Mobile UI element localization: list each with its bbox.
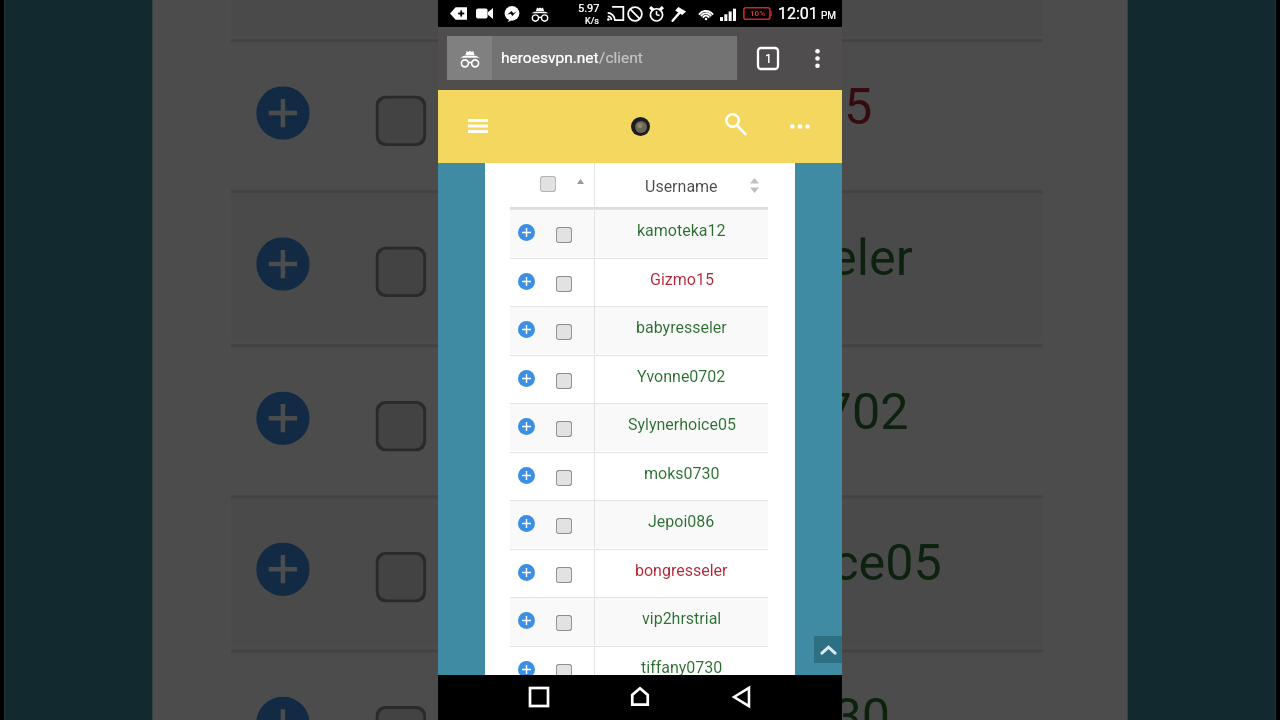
staticText: vip2hrstrial [642, 609, 722, 628]
button[interactable]: Expand row [510, 355, 768, 403]
button[interactable]: Expand row [510, 403, 768, 451]
button[interactable]: Scroll to top [814, 636, 842, 663]
button[interactable]: Expand row [256, 391, 310, 445]
button[interactable]: Select [556, 615, 572, 631]
staticText: babyresseler [627, 228, 914, 288]
staticText: heroesvpn.net [501, 49, 599, 67]
button[interactable]: Expand row [518, 418, 535, 435]
button[interactable]: Expand row [510, 452, 768, 500]
staticText: Jepoi086 [648, 512, 715, 531]
button[interactable]: Select [556, 276, 572, 292]
staticText: K/s [585, 16, 600, 27]
staticText: PM [821, 10, 837, 22]
button[interactable]: Recent apps [517, 675, 561, 720]
button[interactable]: Expand row [510, 500, 768, 548]
button[interactable]: Expand row [231, 344, 1043, 495]
staticText: Yvonne0702 [637, 367, 726, 386]
staticText: Sylynerhoice05 [602, 533, 942, 593]
button[interactable]: Expand row [518, 564, 535, 581]
button[interactable]: Search [714, 103, 758, 147]
button[interactable]: Back [719, 675, 763, 720]
button[interactable]: Tabs [746, 36, 790, 80]
button[interactable]: Menu [456, 104, 500, 148]
button[interactable]: Select [376, 552, 426, 602]
button[interactable]: Expand row [518, 273, 535, 290]
button[interactable]: Select [556, 567, 572, 583]
staticText: Gizmo15 [671, 77, 873, 137]
button[interactable]: Expand row [231, 495, 1043, 646]
button[interactable]: Expand row [518, 321, 535, 338]
staticText: 1 [765, 52, 772, 66]
button[interactable]: Expand row [510, 258, 768, 306]
button[interactable]: Site logo [631, 117, 650, 136]
button[interactable]: Expand row [510, 549, 768, 597]
button[interactable]: Expand row [256, 237, 310, 291]
button[interactable]: Select [556, 227, 572, 243]
staticText: 12:01 [778, 4, 818, 23]
staticText: moks0730 [644, 464, 720, 483]
button[interactable]: Expand row [510, 597, 768, 645]
button[interactable]: Select [376, 247, 426, 297]
button[interactable]: Select [556, 373, 572, 389]
button[interactable]: Select [556, 324, 572, 340]
button[interactable]: Expand row [510, 694, 768, 720]
staticText: Yvonne0702 [631, 382, 911, 442]
button[interactable]: Expand row [518, 224, 535, 241]
button[interactable]: heroesvpn.net [447, 36, 737, 80]
button[interactable]: Select [556, 664, 572, 680]
staticText: moks0730 [653, 687, 892, 720]
button[interactable]: Select [556, 518, 572, 534]
staticText: 5.97 [578, 2, 600, 15]
button[interactable]: Expand row [510, 209, 768, 257]
staticText: babyresseler [636, 318, 727, 337]
staticText: bongresseler [635, 561, 728, 580]
button[interactable]: More options [795, 36, 839, 80]
staticText: Username [645, 177, 718, 196]
button[interactable]: Expand row [518, 467, 535, 484]
button[interactable]: Expand row [510, 306, 768, 354]
button[interactable]: Expand row [231, 0, 1043, 36]
staticText: Sylynerhoice05 [628, 415, 736, 434]
button[interactable]: Expand row [256, 697, 310, 720]
button[interactable]: Select [556, 421, 572, 437]
button[interactable]: Expand row [518, 661, 535, 678]
button[interactable]: Home [618, 675, 662, 720]
staticText: /client [599, 49, 643, 67]
button[interactable]: Expand row [231, 39, 1043, 190]
button[interactable]: Expand row [510, 646, 768, 694]
button[interactable]: More [778, 104, 822, 148]
button[interactable]: Expand row [256, 542, 310, 596]
button[interactable]: Expand row [518, 612, 535, 629]
button[interactable]: Expand row [231, 190, 1043, 341]
staticText: tiffany0730 [641, 658, 723, 677]
button[interactable]: Expand row [256, 86, 310, 140]
button[interactable]: Select [376, 401, 426, 451]
staticText: kamoteka12 [637, 221, 726, 240]
button[interactable]: Expand row [518, 370, 535, 387]
button[interactable]: Select [376, 706, 426, 720]
button[interactable]: Select [540, 176, 556, 192]
button[interactable]: Select [376, 96, 426, 146]
button[interactable]: Select [556, 470, 572, 486]
staticText: 10% [750, 9, 766, 18]
staticText: Gizmo15 [650, 270, 714, 289]
button[interactable]: Expand row [518, 515, 535, 532]
button[interactable]: Expand row [231, 649, 1043, 720]
